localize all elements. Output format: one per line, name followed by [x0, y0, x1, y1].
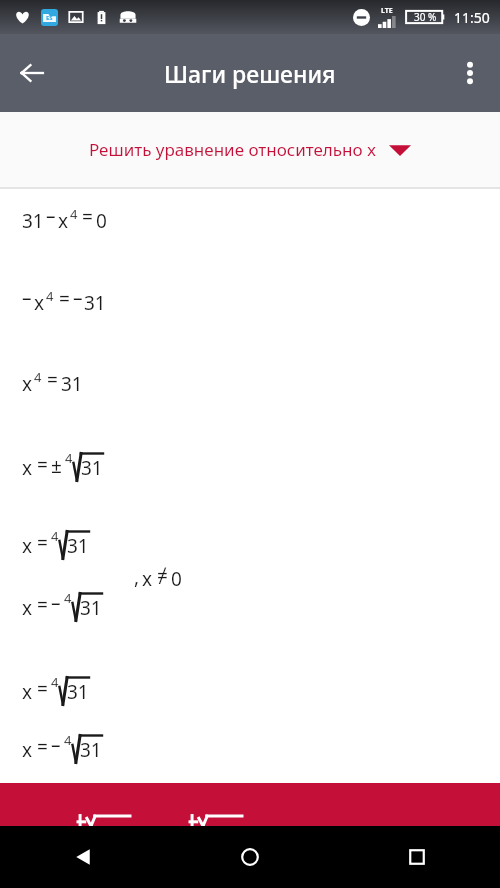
staticText: 31	[84, 290, 106, 316]
staticText: ≠	[157, 563, 168, 589]
staticText: ES	[46, 14, 53, 22]
staticText: 4	[51, 527, 59, 545]
staticText: =	[59, 286, 70, 312]
staticText: =	[37, 734, 48, 760]
button[interactable]: Ответ	[0, 783, 500, 826]
staticText: x	[22, 595, 33, 621]
staticText: LTE	[381, 6, 393, 16]
staticText: =	[37, 452, 48, 478]
staticText: Решить уравнение относительно x	[89, 138, 377, 161]
staticText: 0	[96, 208, 107, 234]
staticText: 0	[171, 566, 182, 592]
button[interactable]: Решить уравнение относительно x	[0, 112, 500, 187]
staticText: –	[46, 203, 56, 229]
staticText: ±	[51, 453, 62, 479]
staticText: 31	[80, 595, 102, 621]
staticText: 4	[65, 449, 73, 467]
staticText: 31	[61, 371, 83, 397]
button[interactable]: Назад	[0, 826, 166, 888]
staticText: =	[37, 676, 48, 702]
staticText: x	[142, 566, 153, 592]
staticText: x	[58, 208, 69, 234]
staticText: x	[34, 290, 45, 316]
staticText: 11:50	[454, 8, 490, 27]
staticText: =	[47, 367, 58, 393]
staticText: Шаги решения	[164, 58, 336, 89]
staticText: 30 %	[414, 10, 437, 24]
staticText: –	[73, 285, 83, 311]
staticText: x	[22, 455, 33, 481]
staticText: 31	[81, 455, 103, 481]
staticText: 4	[34, 368, 42, 386]
staticText: x	[22, 371, 33, 397]
staticText: x	[22, 533, 33, 559]
staticText: –	[51, 590, 61, 616]
staticText: =	[37, 592, 48, 618]
staticText: 4	[64, 731, 72, 749]
button[interactable]: Недавние	[333, 826, 500, 888]
staticText: 4	[64, 589, 72, 607]
staticText: 31	[67, 679, 89, 705]
staticText: –	[51, 732, 61, 758]
staticText: 31	[67, 533, 89, 559]
staticText: =	[37, 530, 48, 556]
staticText: 31	[22, 208, 44, 234]
staticText: 31	[80, 737, 102, 763]
button[interactable]: Ещё	[446, 49, 494, 97]
staticText: 4	[70, 205, 78, 223]
staticText: ,	[134, 564, 140, 590]
staticText: x	[22, 679, 33, 705]
staticText: 4	[51, 673, 59, 691]
staticText: x	[22, 737, 33, 763]
staticText: 4	[46, 287, 54, 305]
staticText: =	[82, 204, 93, 230]
staticText: –	[22, 285, 32, 311]
button[interactable]: Главный экран	[166, 826, 333, 888]
button[interactable]: Назад	[8, 49, 56, 97]
